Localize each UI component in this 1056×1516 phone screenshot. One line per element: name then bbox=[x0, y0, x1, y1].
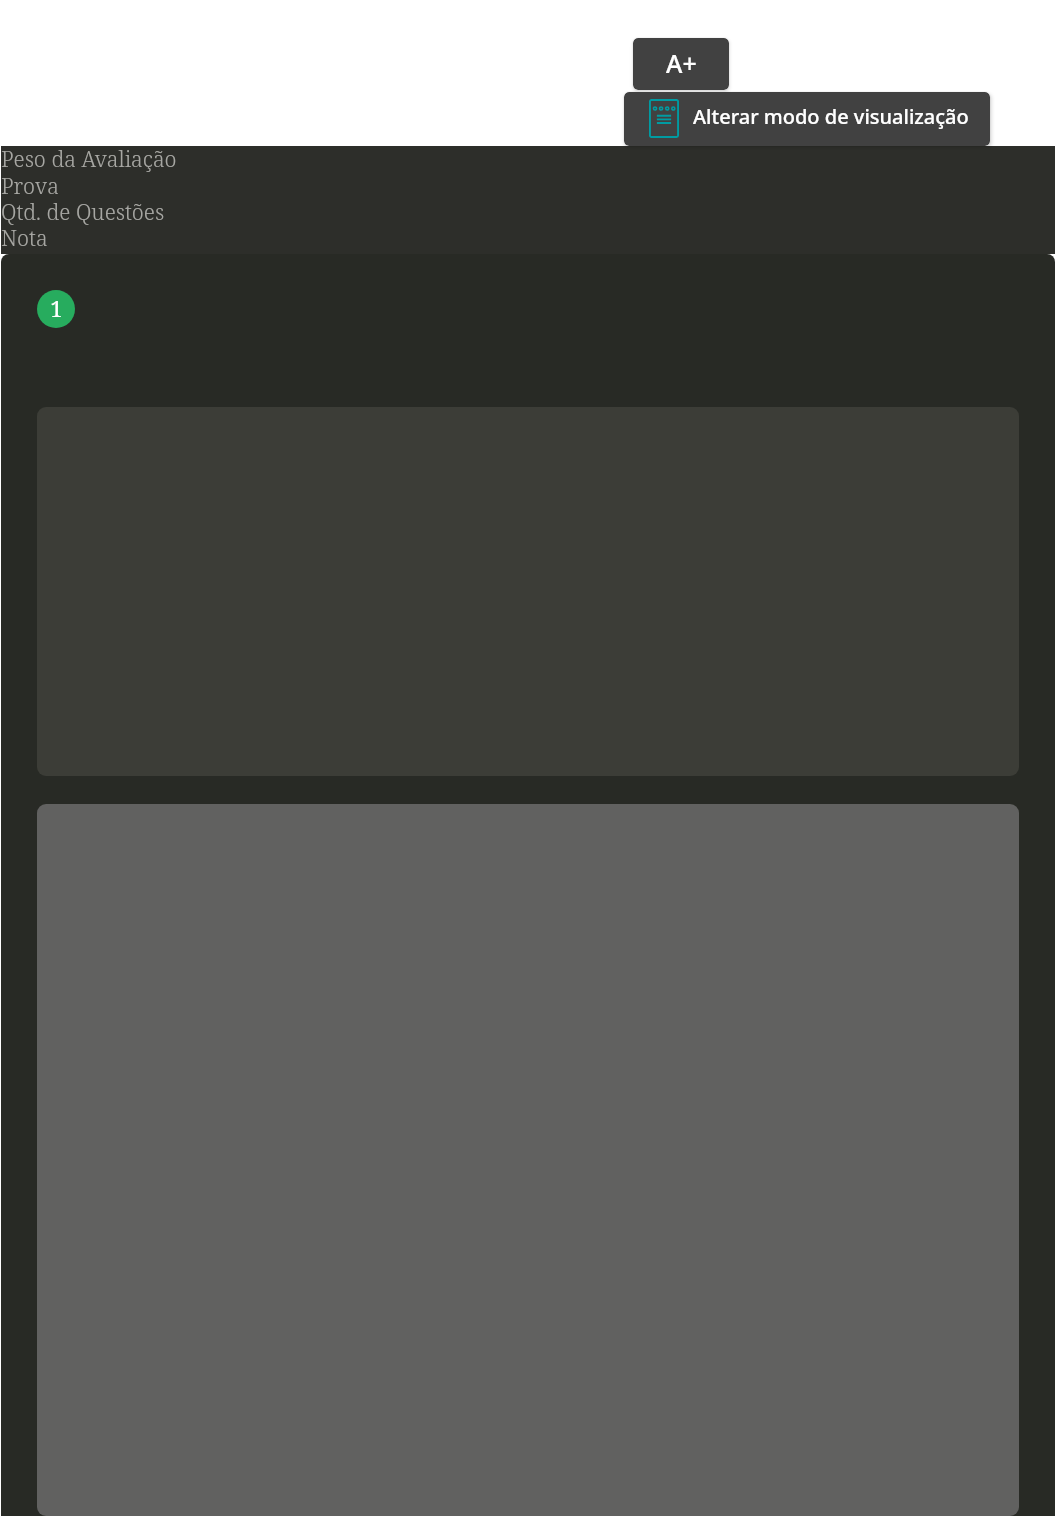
staticText: Alterar modo de visualização bbox=[693, 103, 969, 130]
staticText: Peso da Avaliação Prova Qtd. de Questões… bbox=[1, 144, 177, 252]
button[interactable]: 1 bbox=[37, 290, 75, 328]
other: Alterar modo de visualização bbox=[649, 99, 679, 138]
staticText: A+ bbox=[666, 46, 697, 80]
button[interactable]: A+ bbox=[633, 38, 729, 90]
button[interactable]: Alterar modo de visualização bbox=[624, 92, 990, 146]
staticText: 1 bbox=[50, 293, 63, 323]
